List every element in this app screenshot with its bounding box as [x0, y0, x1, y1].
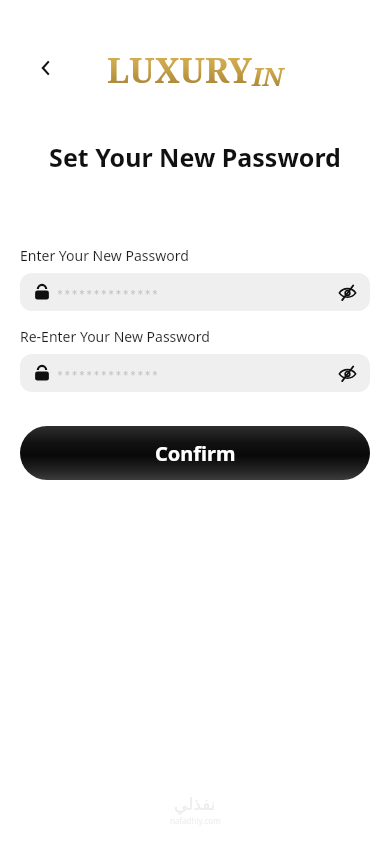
staticText: Enter Your New Password: [20, 246, 189, 265]
button[interactable]: Back: [28, 50, 64, 86]
button[interactable]: Show password: [330, 275, 364, 309]
button[interactable]: Show password: [20, 354, 370, 392]
staticText: Re-Enter Your New Password: [20, 327, 210, 346]
button[interactable]: Show password: [20, 273, 370, 311]
button[interactable]: Confirm: [20, 426, 370, 480]
staticText: Confirm: [155, 440, 236, 467]
button[interactable]: Show password: [330, 356, 364, 390]
staticText: نفذلي: [174, 794, 216, 814]
staticText: nafadhly.com: [170, 815, 221, 826]
staticText: LUXURY: [107, 47, 252, 93]
staticText: Set Your New Password: [16, 140, 374, 174]
staticText: IN: [252, 58, 283, 93]
